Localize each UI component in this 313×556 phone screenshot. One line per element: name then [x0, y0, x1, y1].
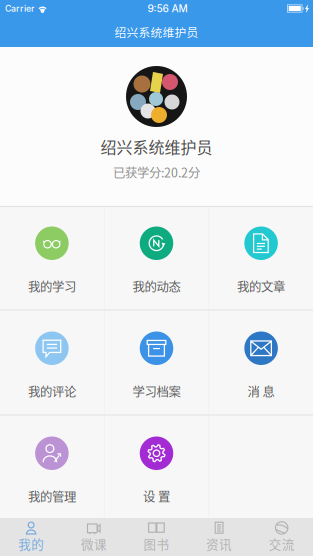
staticText: 我的	[18, 535, 44, 553]
staticText: 绍兴系统维护员	[114, 23, 198, 40]
button[interactable]: 学习档案	[104, 310, 208, 414]
button[interactable]: 我的学习	[0, 205, 104, 309]
staticText: 设 置	[143, 487, 170, 505]
staticText: 交流	[269, 535, 295, 553]
button[interactable]: 消 息	[209, 310, 313, 414]
button[interactable]: 资讯	[188, 518, 250, 556]
button[interactable]: 设 置	[104, 415, 208, 519]
button[interactable]: Profile photo	[126, 66, 187, 127]
staticText: 资讯	[206, 535, 232, 553]
staticText: 绍兴系统维护员	[100, 135, 212, 158]
staticText: 我的管理	[28, 487, 76, 505]
staticText: 图书	[143, 535, 169, 553]
button[interactable]: 图书	[125, 518, 188, 556]
button[interactable]: 我的	[0, 518, 63, 556]
button[interactable]: 微课	[63, 518, 125, 556]
staticText: 我的文章	[237, 277, 285, 295]
staticText: 消 息	[248, 382, 275, 400]
staticText: 我的学习	[28, 277, 76, 295]
button[interactable]: 绍兴系统维护员	[0, 17, 313, 47]
button[interactable]: 交流	[250, 518, 313, 556]
button[interactable]: 我的动态	[104, 205, 208, 309]
staticText: 微课	[81, 535, 107, 553]
button[interactable]: 我的文章	[209, 205, 313, 309]
staticText: 已获学分:20.2分	[113, 163, 200, 181]
button[interactable]: 我的评论	[0, 310, 104, 414]
staticText: 9:56 AM	[147, 2, 187, 15]
staticText: 我的评论	[28, 382, 76, 400]
staticText: 学习档案	[132, 382, 180, 400]
staticText: 我的动态	[132, 277, 180, 295]
staticText: Carrier	[5, 3, 34, 14]
button[interactable]: 我的管理	[0, 415, 104, 519]
